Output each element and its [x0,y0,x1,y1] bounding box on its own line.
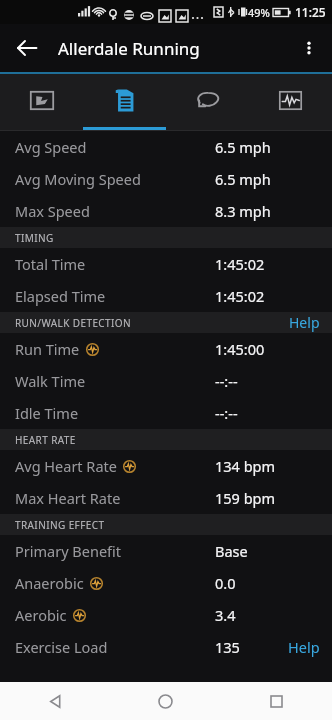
staticText: --:-- [215,403,238,423]
button[interactable]: Avg Speed [0,131,332,163]
staticText: Run Time [15,339,80,359]
staticText: 0.0 [215,573,236,593]
staticText: Allerdale Running [58,37,200,60]
staticText: HEART RATE [15,433,76,447]
button[interactable]: Anaerobic [0,567,332,599]
staticText: 11:25 [295,4,326,20]
button[interactable]: Home [110,682,221,720]
staticText: 6.5 mph [215,137,271,157]
staticText: 1:45:02 [215,254,265,274]
staticText: Max Speed [15,201,90,221]
staticText: 3.4 [215,605,236,625]
button[interactable]: Map [0,74,83,130]
staticText: Avg Speed [15,137,87,157]
staticText: Aerobic [15,605,67,625]
button[interactable]: Walk Time [0,365,332,397]
button[interactable]: Back [6,27,48,69]
staticText: Total Time [15,254,86,274]
staticText: TIMING [15,231,54,245]
button[interactable]: More options [288,27,330,69]
staticText: Exercise Load [15,637,108,657]
button[interactable]: Avg Heart Rate [0,450,332,482]
button[interactable]: Laps [166,74,249,130]
staticText: 49% [248,5,270,20]
staticText: TRAINING EFFECT [15,518,105,532]
staticText: 8.3 mph [215,201,271,221]
staticText: 135 [215,637,240,657]
staticText: Help [288,637,320,657]
button[interactable]: Idle Time [0,397,332,429]
button[interactable]: Aerobic [0,599,332,631]
button[interactable]: Help [288,631,320,663]
button[interactable]: Charts [249,74,332,130]
button[interactable]: Elapsed Time [0,280,332,312]
button[interactable]: Total Time [0,248,332,280]
button[interactable]: Recent apps [221,682,332,720]
staticText: Idle Time [15,403,79,423]
staticText: Base [215,541,248,561]
button[interactable]: Avg Moving Speed [0,163,332,195]
staticText: Avg Moving Speed [15,169,141,189]
staticText: 159 bpm [215,488,276,508]
button[interactable]: Exercise Load [0,631,332,663]
button[interactable]: Max Speed [0,195,332,227]
staticText: RUN/WALK DETECTION [15,316,132,330]
button[interactable]: Details [83,74,166,130]
staticText: Max Heart Rate [15,488,121,508]
staticText: --:-- [215,371,238,391]
staticText: Anaerobic [15,573,84,593]
staticText: Primary Benefit [15,541,122,561]
staticText: Avg Heart Rate [15,456,117,476]
staticText: 1:45:02 [215,286,265,306]
staticText: 134 bpm [215,456,276,476]
staticText: Help [289,313,320,332]
button[interactable]: Max Heart Rate [0,482,332,514]
button[interactable]: Help [289,312,320,333]
button[interactable]: Run Time [0,333,332,365]
staticText: 6.5 mph [215,169,271,189]
staticText: Elapsed Time [15,286,106,306]
button[interactable]: Back [0,682,110,720]
button[interactable]: Primary Benefit [0,535,332,567]
staticText: Walk Time [15,371,86,391]
staticText: 1:45:00 [215,339,265,359]
